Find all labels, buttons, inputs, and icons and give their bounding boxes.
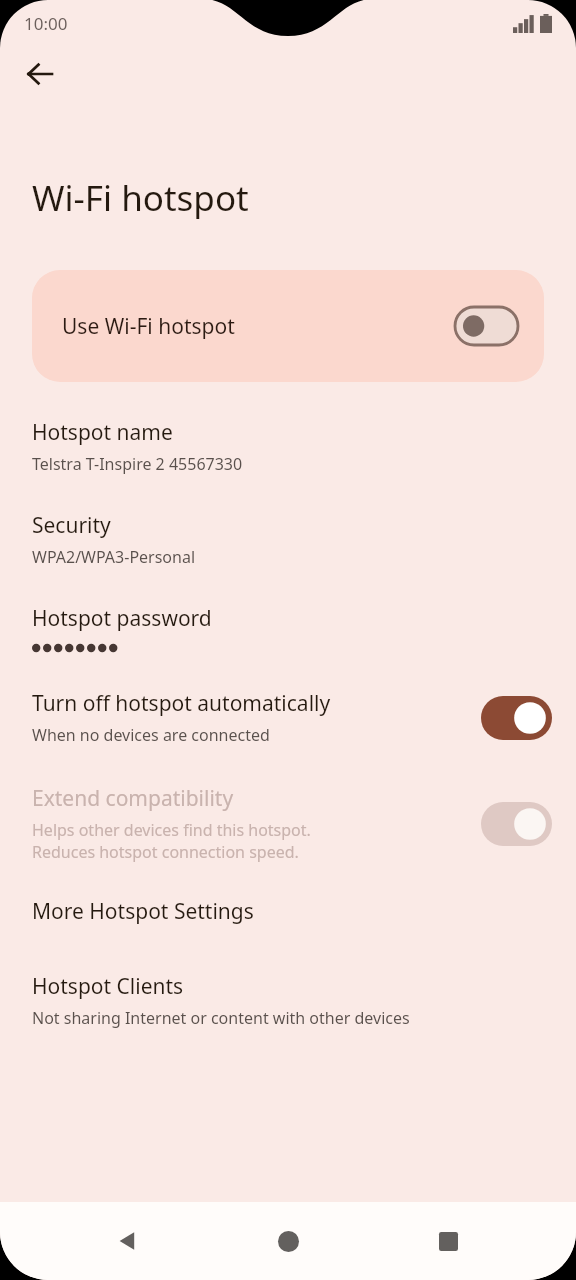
button[interactable]: Use Wi-Fi hotspot [32, 270, 544, 382]
staticText: Helps other devices find this hotspot. [32, 819, 311, 841]
button[interactable]: Recents [416, 1209, 480, 1273]
staticText: Hotspot Clients [32, 972, 184, 1001]
button[interactable]: Hotspot Clients [0, 972, 576, 1029]
staticText: Hotspot name [32, 418, 173, 447]
button[interactable]: Security [0, 511, 576, 568]
staticText: WPA2/WPA3-Personal [32, 546, 196, 568]
button[interactable]: More Hotspot Settings [0, 897, 576, 926]
staticText: 10:00 [24, 12, 68, 35]
button[interactable]: Hotspot password [0, 604, 576, 653]
button[interactable]: Back [96, 1209, 160, 1273]
button[interactable]: Hotspot name [0, 418, 576, 475]
staticText: Reduces hotspot connection speed. [32, 841, 299, 863]
staticText: Hotspot password [32, 604, 212, 633]
button[interactable]: Home [256, 1209, 320, 1273]
button[interactable]: Back [12, 46, 68, 102]
staticText: Extend compatibility [32, 784, 234, 813]
staticText: Security [32, 511, 111, 540]
staticText: Not sharing Internet or content with oth… [32, 1007, 410, 1029]
staticText: More Hotspot Settings [32, 897, 254, 926]
staticText: Turn off hotspot automatically [32, 689, 331, 718]
staticText: Telstra T-Inspire 2 45567330 [32, 453, 243, 475]
staticText: Use Wi-Fi hotspot [62, 312, 235, 341]
button[interactable]: Turn off hotspot automatically [0, 689, 576, 746]
staticText: When no devices are connected [32, 724, 270, 746]
staticText: Wi-Fi hotspot [32, 174, 249, 222]
